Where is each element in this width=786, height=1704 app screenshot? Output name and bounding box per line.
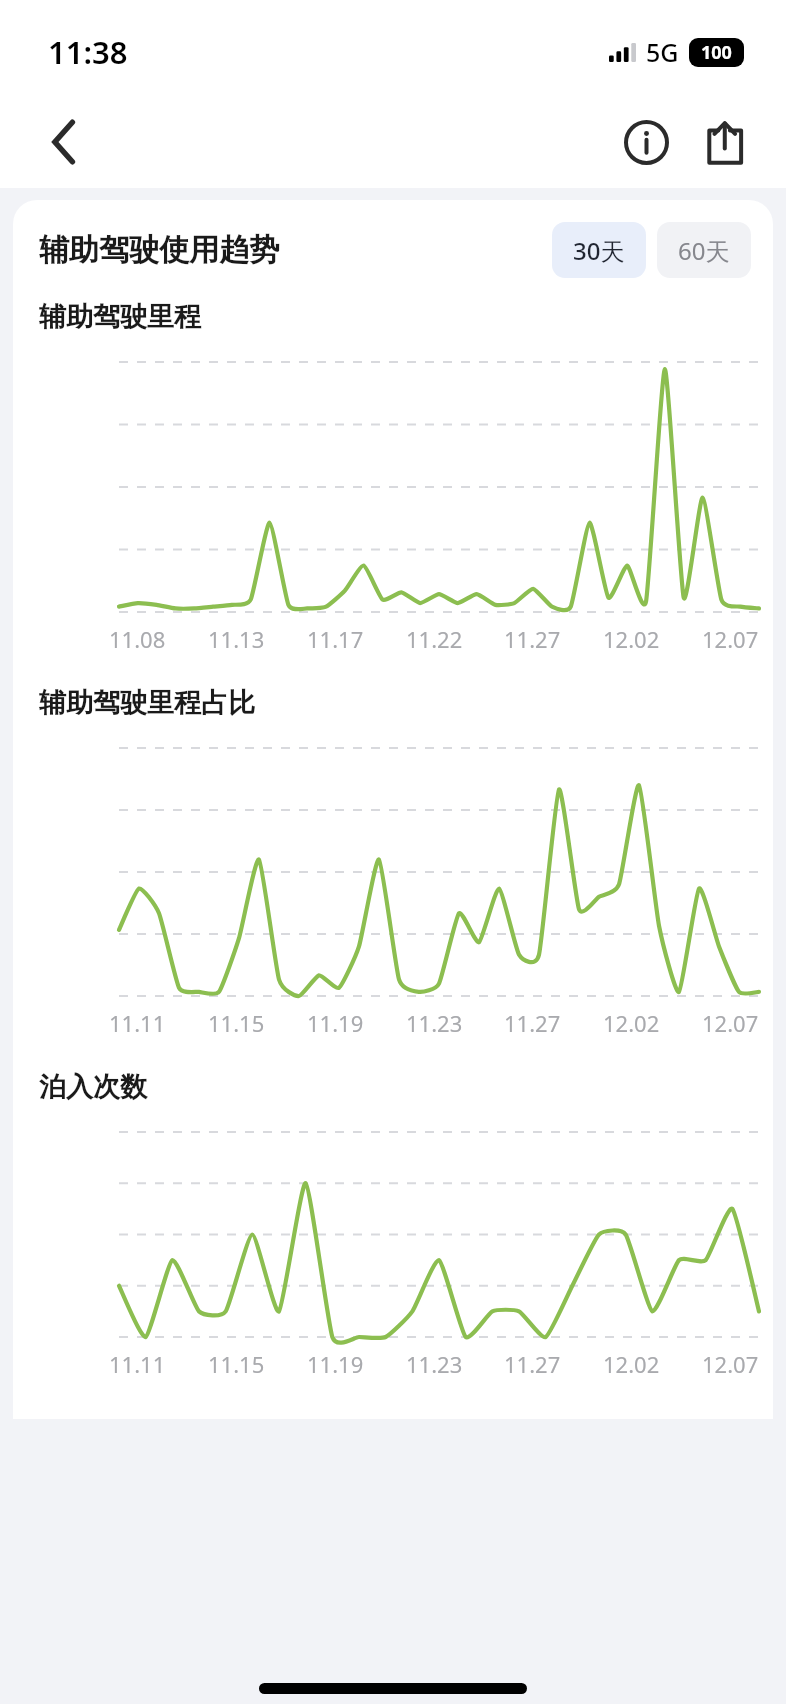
staticText: 5G xyxy=(646,35,679,69)
button[interactable]: 60天 xyxy=(657,222,751,278)
staticText: 辅助驾驶使用趋势 xyxy=(39,231,279,269)
staticText: 泊入次数 xyxy=(39,1070,147,1104)
staticText: 11.19 xyxy=(307,1349,364,1379)
staticText: 11.19 xyxy=(307,1008,364,1038)
staticText: 12.07 xyxy=(702,1349,759,1379)
staticText: 11.08 xyxy=(109,624,166,654)
staticText: 11.23 xyxy=(406,1349,463,1379)
staticText: 12.07 xyxy=(702,1008,759,1038)
staticText: 11.22 xyxy=(406,624,463,654)
staticText: 12.07 xyxy=(702,624,759,654)
staticText: 30天 xyxy=(573,234,625,267)
staticText: 100 xyxy=(701,40,732,65)
staticText: 11.13 xyxy=(208,624,265,654)
staticText: 60天 xyxy=(678,234,730,267)
button[interactable]: Info xyxy=(608,104,684,180)
button[interactable]: 30天 xyxy=(552,222,646,278)
button[interactable]: Share xyxy=(688,104,764,180)
staticText: 11.27 xyxy=(504,1008,561,1038)
staticText: 11.15 xyxy=(208,1349,265,1379)
staticText: 辅助驾驶里程占比 xyxy=(39,686,255,720)
button[interactable]: Back xyxy=(28,106,100,178)
staticText: 12.02 xyxy=(603,624,660,654)
staticText: 11.11 xyxy=(109,1349,166,1379)
staticText: 11:38 xyxy=(48,31,128,73)
staticText: 11.27 xyxy=(504,624,561,654)
staticText: 11.11 xyxy=(109,1008,166,1038)
staticText: 11.17 xyxy=(307,624,364,654)
staticText: 12.02 xyxy=(603,1008,660,1038)
staticText: 11.15 xyxy=(208,1008,265,1038)
staticText: 11.23 xyxy=(406,1008,463,1038)
staticText: 12.02 xyxy=(603,1349,660,1379)
staticText: 辅助驾驶里程 xyxy=(39,300,201,334)
staticText: 11.27 xyxy=(504,1349,561,1379)
